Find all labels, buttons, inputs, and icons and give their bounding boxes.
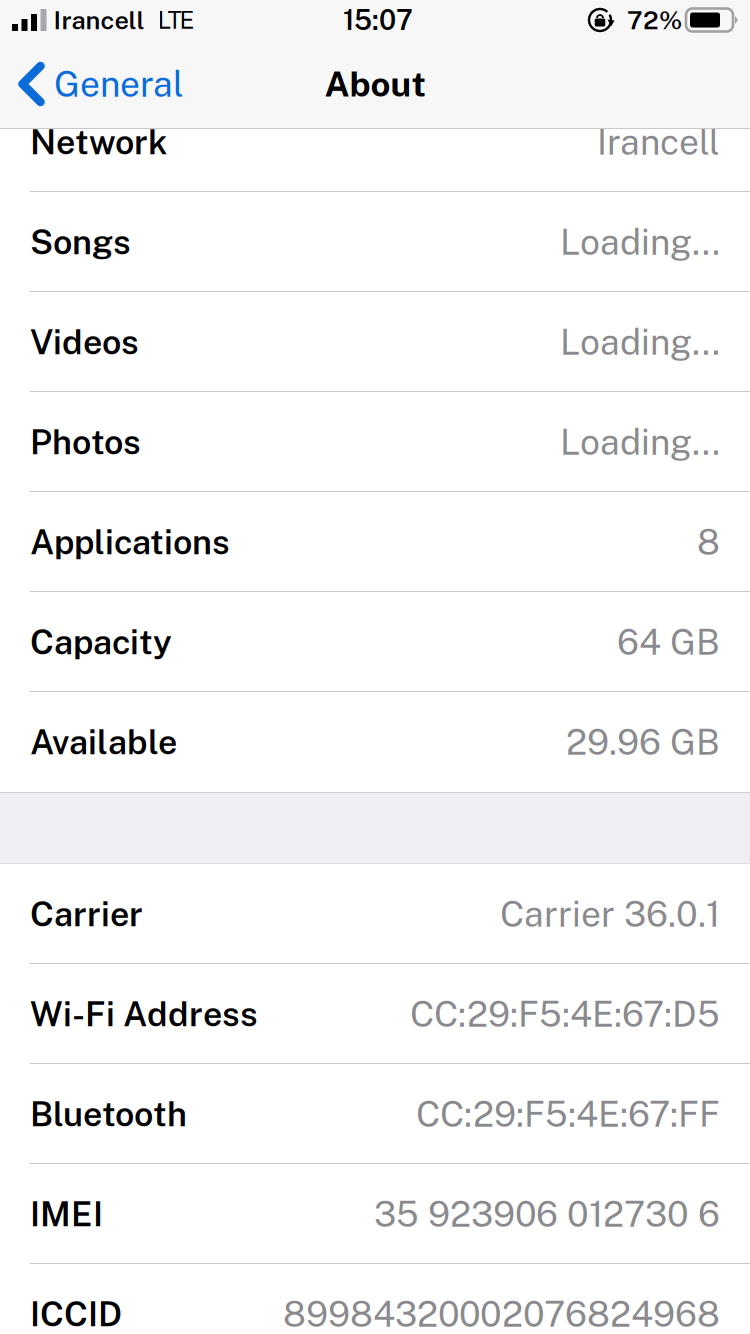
button[interactable]: Carrier bbox=[0, 864, 750, 964]
button[interactable]: General bbox=[0, 40, 195, 128]
staticText: 29.96 GB bbox=[566, 721, 720, 763]
button[interactable]: Wi-Fi Address bbox=[0, 964, 750, 1064]
staticText: 8 bbox=[697, 521, 720, 563]
staticText: 15:07 bbox=[343, 4, 413, 36]
staticText: About bbox=[324, 64, 425, 104]
staticText: 35 923906 012730 6 bbox=[374, 1193, 720, 1235]
staticText: 89984320002076824968 bbox=[283, 1293, 720, 1334]
staticText: 72% bbox=[627, 5, 682, 35]
staticText: ICCID bbox=[30, 1294, 122, 1334]
button[interactable]: Applications bbox=[0, 492, 750, 592]
button[interactable]: Photos bbox=[0, 392, 750, 492]
staticText: Network bbox=[30, 122, 167, 162]
staticText: CC:29:F5:4E:67:D5 bbox=[410, 993, 720, 1035]
button[interactable]: Network bbox=[0, 92, 750, 192]
button[interactable]: ICCID bbox=[0, 1264, 750, 1334]
staticText: Loading... bbox=[560, 421, 720, 463]
staticText: Videos bbox=[30, 322, 139, 362]
staticText: Wi-Fi Address bbox=[30, 994, 258, 1034]
staticText: LTE bbox=[157, 6, 194, 34]
staticText: Photos bbox=[30, 422, 141, 462]
staticText: Carrier 36.0.1 bbox=[500, 893, 720, 935]
button[interactable]: Capacity bbox=[0, 592, 750, 692]
staticText: Carrier bbox=[30, 894, 143, 934]
staticText: Irancell bbox=[53, 5, 144, 35]
staticText: Songs bbox=[30, 222, 131, 262]
staticText: CC:29:F5:4E:67:FF bbox=[416, 1093, 720, 1135]
staticText: Available bbox=[30, 722, 177, 762]
staticText: General bbox=[54, 63, 184, 105]
button[interactable]: IMEI bbox=[0, 1164, 750, 1264]
staticText: 64 GB bbox=[617, 621, 720, 663]
button[interactable]: Bluetooth bbox=[0, 1064, 750, 1164]
staticText: Applications bbox=[30, 522, 230, 562]
button[interactable]: Videos bbox=[0, 292, 750, 392]
staticText: Bluetooth bbox=[30, 1094, 187, 1134]
button[interactable]: Available bbox=[0, 692, 750, 792]
staticText: Loading... bbox=[560, 321, 720, 363]
staticText: IMEI bbox=[30, 1194, 103, 1234]
staticText: Capacity bbox=[30, 622, 172, 662]
staticText: Irancell bbox=[597, 121, 720, 163]
staticText: Loading... bbox=[560, 221, 720, 263]
button[interactable]: Songs bbox=[0, 192, 750, 292]
